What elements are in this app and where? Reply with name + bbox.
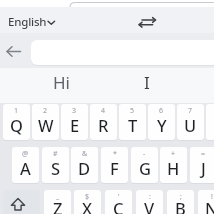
staticText: 2 — [43, 106, 48, 116]
staticText: Y — [157, 114, 167, 136]
staticText: S — [51, 157, 61, 179]
staticText: + — [171, 149, 176, 159]
staticText: 7 — [188, 106, 193, 116]
staticText: 4 — [101, 106, 106, 116]
button[interactable]: 3 — [61, 104, 88, 140]
staticText: F — [110, 157, 119, 179]
staticText: H — [167, 157, 180, 179]
button[interactable]: - — [131, 147, 158, 183]
button[interactable]: $ — [74, 190, 101, 214]
staticText: & — [82, 149, 88, 159]
staticText: V — [144, 197, 155, 214]
staticText: J — [201, 157, 206, 179]
staticText: English — [8, 14, 47, 30]
staticText: 3 — [72, 106, 77, 116]
staticText: E — [70, 114, 80, 136]
staticText: G — [139, 157, 151, 179]
staticText: Z — [53, 197, 63, 214]
button[interactable]: # — [42, 147, 69, 183]
staticText: 1 — [14, 106, 19, 116]
button[interactable]: @ — [12, 147, 39, 183]
staticText: : — [149, 192, 151, 202]
staticText: ' — [118, 192, 120, 202]
staticText: W — [38, 114, 54, 136]
button[interactable]: : — [136, 190, 163, 214]
staticText: X — [82, 197, 93, 214]
staticText: N — [205, 197, 214, 214]
staticText: D — [78, 157, 91, 179]
staticText: A — [20, 157, 31, 179]
staticText: Q — [10, 114, 23, 136]
button[interactable]: ' — [105, 190, 132, 214]
staticText: B — [175, 197, 186, 214]
button[interactable]: 4 — [90, 104, 117, 140]
staticText: = — [201, 149, 206, 159]
staticText: ; — [180, 192, 182, 202]
button[interactable]: 7 — [177, 104, 204, 140]
staticText: I — [144, 71, 150, 94]
button[interactable]: 6 — [148, 104, 175, 140]
button[interactable]: _ — [44, 190, 71, 214]
staticText: # — [53, 149, 58, 159]
staticText: ! — [211, 192, 213, 202]
button[interactable]: + — [160, 147, 187, 183]
staticText: _ — [56, 192, 60, 202]
button[interactable]: ; — [167, 190, 194, 214]
button[interactable]: = — [190, 147, 214, 183]
staticText: Hi — [53, 71, 70, 94]
button[interactable] — [5, 44, 23, 59]
staticText: U — [184, 114, 197, 136]
button[interactable]: 5 — [119, 104, 146, 140]
staticText: T — [128, 114, 138, 136]
button[interactable]: 2 — [32, 104, 59, 140]
button[interactable]: English — [8, 13, 58, 31]
button[interactable]: ! — [198, 190, 214, 214]
button[interactable]: Hi — [40, 67, 82, 97]
button[interactable]: & — [71, 147, 98, 183]
button[interactable]: I — [126, 67, 168, 97]
button[interactable]: * — [101, 147, 128, 183]
button[interactable] — [136, 14, 160, 32]
button[interactable] — [3, 190, 40, 214]
staticText: 6 — [159, 106, 164, 116]
staticText: C — [113, 197, 124, 214]
staticText: 5 — [130, 106, 135, 116]
staticText: $ — [85, 192, 90, 202]
staticText: - — [143, 149, 146, 159]
staticText: * — [113, 149, 117, 159]
button[interactable]: 1 — [3, 104, 30, 140]
staticText: @ — [22, 149, 29, 159]
staticText: R — [98, 114, 109, 136]
